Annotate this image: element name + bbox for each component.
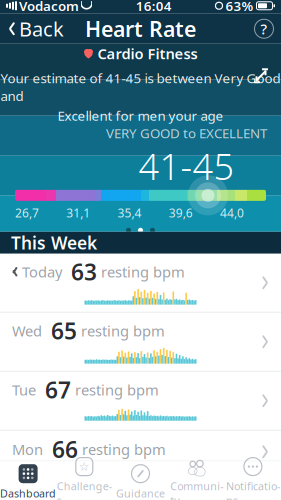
staticText: Back <box>19 15 64 42</box>
button[interactable]: Community <box>169 461 225 500</box>
button[interactable]: Expand <box>247 62 275 90</box>
staticText: Guidance <box>116 486 165 500</box>
staticText: resting bpm <box>75 380 159 399</box>
button[interactable]: Help <box>247 14 281 44</box>
button[interactable]: Wed <box>0 313 281 371</box>
button[interactable]: Guidance <box>112 461 169 500</box>
button[interactable]: Today <box>0 254 281 312</box>
button[interactable]: Dashboard <box>0 461 56 500</box>
staticText: Excellent for men your age <box>57 107 223 124</box>
staticText: Dashboard <box>0 486 56 500</box>
staticText: Your estimate of 41-45 is between Very G… <box>0 69 280 105</box>
staticText: 66 <box>52 434 78 464</box>
staticText: Notifications <box>226 479 280 500</box>
staticText: Challenges <box>57 479 112 500</box>
button[interactable]: Back <box>0 14 72 44</box>
staticText: Community <box>170 479 223 500</box>
staticText: ? <box>260 19 267 38</box>
button[interactable]: Tue <box>0 372 281 430</box>
staticText: Vodacom <box>19 0 79 15</box>
staticText: resting bpm <box>82 439 166 459</box>
staticText: resting bpm <box>81 321 165 340</box>
staticText: VERY GOOD to EXCELLENT <box>106 124 267 142</box>
staticText: Heart Rate <box>85 15 196 43</box>
staticText: resting bpm <box>101 262 185 281</box>
staticText: 26,7 <box>15 205 39 221</box>
staticText: Tue <box>12 380 36 399</box>
staticText: Cardio Fitness <box>97 44 197 63</box>
staticText: ☆ <box>79 460 90 473</box>
staticText: This Week <box>11 231 97 254</box>
staticText: 35,4 <box>117 205 141 221</box>
button[interactable]: Mon <box>0 431 281 461</box>
staticText: 44,0 <box>220 205 244 221</box>
staticText: 65 <box>51 316 77 346</box>
staticText: 31,1 <box>66 205 90 221</box>
button[interactable]: ☆ <box>56 461 112 500</box>
staticText: Today <box>22 262 62 281</box>
staticText: Mon <box>12 439 43 459</box>
staticText: 63% <box>225 0 253 15</box>
staticText: Wed <box>12 321 42 340</box>
staticText: 16:04 <box>136 0 172 15</box>
staticText: 63 <box>71 257 97 287</box>
staticText: 67 <box>45 375 71 405</box>
button[interactable]: Notifications <box>225 461 281 500</box>
staticText: 39,6 <box>169 205 193 221</box>
staticText: 41-45 <box>138 142 234 190</box>
